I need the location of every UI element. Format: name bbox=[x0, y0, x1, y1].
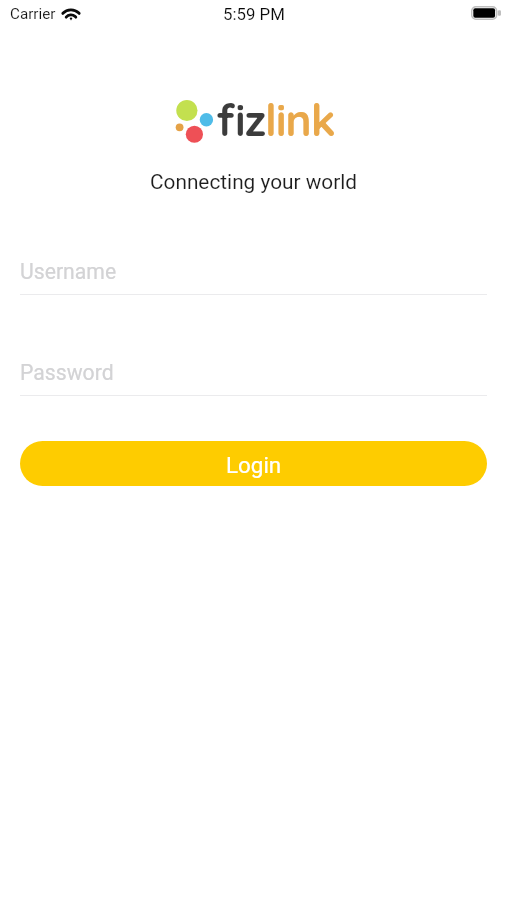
other: Battery full bbox=[471, 6, 501, 20]
staticText: Carrier bbox=[10, 5, 56, 23]
staticText: Username bbox=[20, 259, 117, 284]
staticText: Login bbox=[226, 452, 282, 478]
staticText: 5:59 PM bbox=[223, 4, 285, 24]
button[interactable]: Login bbox=[20, 441, 487, 486]
button[interactable]: Username bbox=[0, 240, 507, 295]
staticText: fiz bbox=[216, 92, 265, 147]
button[interactable]: Password bbox=[0, 340, 507, 396]
staticText: link bbox=[265, 92, 335, 147]
other: Wi-Fi signal bbox=[61, 7, 81, 22]
staticText: Connecting your world bbox=[0, 170, 507, 194]
staticText: Password bbox=[20, 360, 114, 385]
